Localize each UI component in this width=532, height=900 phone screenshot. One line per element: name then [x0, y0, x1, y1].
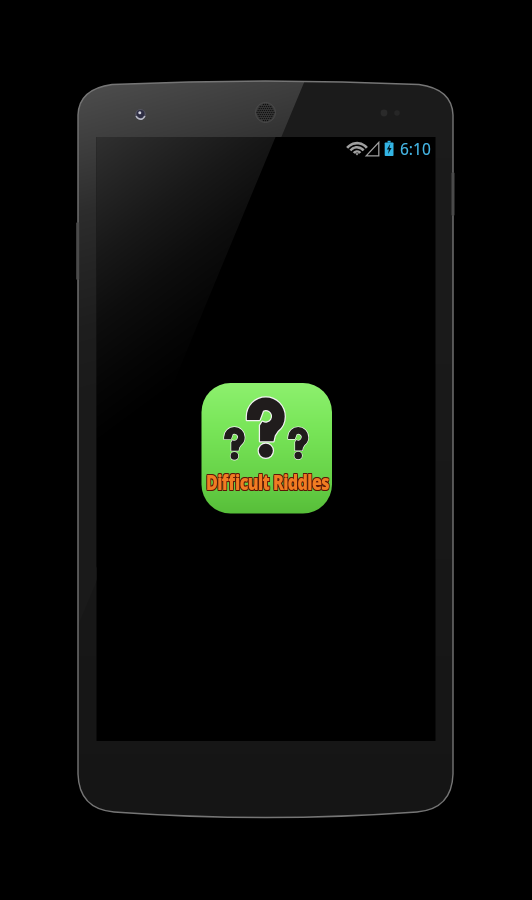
staticText: Difficult Riddles [205, 466, 328, 490]
staticText: Difficult Riddles [205, 467, 328, 491]
staticText: 6:10 [400, 138, 431, 158]
staticText: Difficult Riddles [206, 466, 329, 490]
staticText: Difficult Riddles [207, 468, 330, 492]
staticText: Difficult Riddles [207, 466, 330, 490]
staticText: Difficult Riddles [207, 467, 330, 491]
staticText: Difficult Riddles [205, 468, 328, 492]
staticText: Difficult Riddles [206, 467, 329, 491]
staticText: Difficult Riddles [206, 468, 329, 492]
